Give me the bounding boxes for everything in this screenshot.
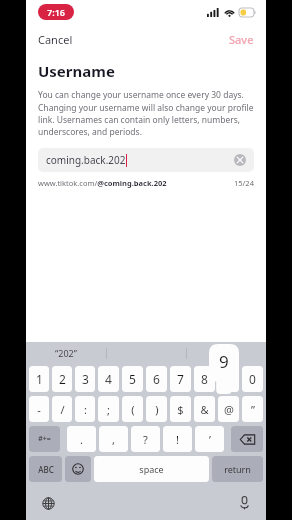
staticText: . — [80, 432, 83, 447]
staticText: 1 — [36, 371, 43, 387]
staticText: : — [84, 402, 87, 417]
staticText: Username — [38, 61, 115, 81]
button[interactable]: 4 — [98, 366, 119, 392]
button[interactable]: @ — [218, 396, 239, 422]
staticText: $ — [177, 402, 184, 417]
button[interactable]: 6 — [146, 366, 167, 392]
button[interactable]: space — [94, 456, 209, 482]
staticText: You can change your username once every … — [38, 89, 254, 137]
staticText: ; — [107, 402, 110, 417]
staticText: & — [200, 402, 209, 417]
staticText: www.tiktok.com/@coming.back.202 — [38, 178, 167, 188]
button[interactable]: / — [52, 396, 72, 422]
button[interactable]: Dictation — [234, 493, 254, 513]
button[interactable]: 3 — [75, 366, 95, 392]
button[interactable]: ) — [146, 396, 167, 422]
staticText: ( — [131, 402, 135, 417]
button[interactable]: Change keyboard language — [38, 493, 58, 513]
button[interactable]: 5 — [122, 366, 143, 392]
staticText: Save — [229, 32, 254, 47]
button[interactable]: - — [29, 396, 49, 422]
button[interactable]: ? — [131, 426, 160, 452]
button[interactable]: Clear text — [234, 154, 246, 166]
staticText: / — [60, 402, 65, 417]
button[interactable]: & — [194, 396, 215, 422]
staticText: @ — [224, 402, 234, 417]
staticText: Cancel — [38, 32, 73, 47]
button[interactable]: 0 — [242, 366, 263, 392]
button[interactable]: : — [75, 396, 95, 422]
staticText: 6 — [153, 371, 160, 387]
button[interactable]: return — [212, 456, 263, 482]
staticText: return — [224, 463, 251, 475]
button[interactable]: ’ — [195, 426, 224, 452]
staticText: 4 — [105, 371, 112, 387]
staticText: ABC — [38, 464, 54, 475]
staticText: #+= — [38, 434, 51, 444]
button[interactable]: ; — [98, 396, 119, 422]
staticText: coming.back.202 — [46, 153, 126, 167]
button[interactable]: 1 — [29, 366, 49, 392]
button[interactable]: Backspace — [231, 426, 263, 452]
button[interactable]: ! — [163, 426, 192, 452]
staticText: 7 — [177, 371, 184, 387]
staticText: ! — [176, 432, 179, 447]
staticText: - — [37, 402, 41, 417]
staticText: 8 — [201, 371, 208, 387]
staticText: 9 — [219, 350, 229, 373]
button[interactable]: 2 — [52, 366, 72, 392]
button[interactable]: 8 — [194, 366, 215, 392]
staticText: 2 — [59, 371, 66, 387]
staticText: “202” — [55, 347, 77, 359]
staticText: ’ — [209, 432, 211, 447]
button[interactable]: coming.back.202 — [38, 148, 254, 172]
button[interactable]: 7 — [170, 366, 191, 392]
staticText: ? — [143, 432, 148, 447]
staticText: ” — [251, 402, 255, 417]
button[interactable]: ” — [242, 396, 263, 422]
button[interactable]: Save — [217, 28, 266, 51]
staticText: 15/24 — [234, 178, 254, 188]
button[interactable]: . — [67, 426, 96, 452]
button[interactable]: “202” — [26, 342, 106, 364]
button[interactable]: , — [99, 426, 128, 452]
button[interactable]: Emoji — [65, 456, 91, 482]
button[interactable]: ABC — [29, 456, 62, 482]
staticText: 7:16 — [47, 6, 65, 18]
staticText: , — [112, 432, 115, 447]
button[interactable]: Cancel — [26, 28, 85, 51]
button[interactable]: 9 — [218, 366, 239, 392]
button[interactable] — [187, 342, 266, 364]
button[interactable]: $ — [170, 396, 191, 422]
staticText: space — [139, 463, 164, 475]
staticText: 0 — [249, 371, 256, 387]
staticText: 3 — [82, 371, 89, 387]
button[interactable]: ( — [122, 396, 143, 422]
staticText: 5 — [129, 371, 136, 387]
button[interactable]: #+= — [29, 426, 60, 452]
staticText: ) — [155, 402, 159, 417]
